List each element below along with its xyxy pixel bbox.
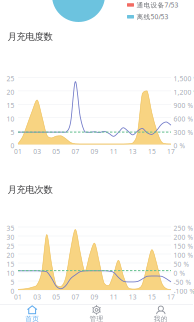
staticText: 09 <box>90 147 98 156</box>
staticText: 05 <box>52 147 60 156</box>
staticText: 15 <box>6 260 14 269</box>
staticText: 05 <box>52 292 60 301</box>
button[interactable]: Profile <box>129 304 193 322</box>
staticText: 通电设备7/53 <box>136 0 178 9</box>
staticText: 首页 <box>25 315 39 322</box>
staticText: 200 % <box>173 233 193 242</box>
staticText: 离线50/53 <box>136 12 168 21</box>
staticText: 20 <box>6 88 14 97</box>
staticText: 0 <box>10 141 14 150</box>
staticText: 300 % <box>173 128 193 137</box>
staticText: 5 <box>10 278 14 287</box>
staticText: 20 <box>6 251 14 260</box>
staticText: 0 % <box>173 269 185 278</box>
staticText: 10 <box>6 269 14 278</box>
staticText: -100 % <box>173 287 194 296</box>
staticText: 150 % <box>173 242 193 251</box>
staticText: 13 <box>129 292 137 301</box>
staticText: 5 <box>10 128 14 137</box>
button[interactable]: Manage <box>64 304 129 322</box>
staticText: 100 % <box>173 251 193 260</box>
staticText: 900 % <box>173 101 193 110</box>
staticText: 15 <box>148 147 156 156</box>
staticText: 07 <box>71 147 79 156</box>
staticText: 我的 <box>154 315 168 322</box>
staticText: 月充电次数 <box>7 184 52 195</box>
staticText: 11 <box>110 147 118 156</box>
staticText: 30 <box>6 233 14 242</box>
staticText: 09 <box>90 292 98 301</box>
staticText: 25 <box>6 242 14 251</box>
staticText: 600 % <box>173 114 193 123</box>
staticText: 0 <box>10 287 14 296</box>
staticText: 01 <box>14 147 22 156</box>
staticText: 25 <box>6 74 14 83</box>
staticText: 17 <box>167 147 175 156</box>
staticText: -50 % <box>173 278 191 287</box>
button[interactable]: Home <box>0 304 64 322</box>
staticText: 01 <box>14 292 22 301</box>
staticText: 11 <box>110 292 118 301</box>
staticText: 管理 <box>89 315 103 322</box>
staticText: 17 <box>167 292 175 301</box>
staticText: 50 % <box>173 260 189 269</box>
staticText: 1,200 % <box>173 88 194 97</box>
staticText: 03 <box>33 147 41 156</box>
staticText: 07 <box>71 292 79 301</box>
staticText: 13 <box>129 147 137 156</box>
staticText: 月充电度数 <box>7 31 52 42</box>
staticText: 15 <box>148 292 156 301</box>
staticText: 03 <box>33 292 41 301</box>
staticText: 10 <box>6 114 14 123</box>
staticText: 250 % <box>173 224 193 233</box>
staticText: 35 <box>6 224 14 233</box>
staticText: 0 % <box>173 141 185 150</box>
staticText: 15 <box>6 101 14 110</box>
staticText: 1,500 % <box>173 74 194 83</box>
